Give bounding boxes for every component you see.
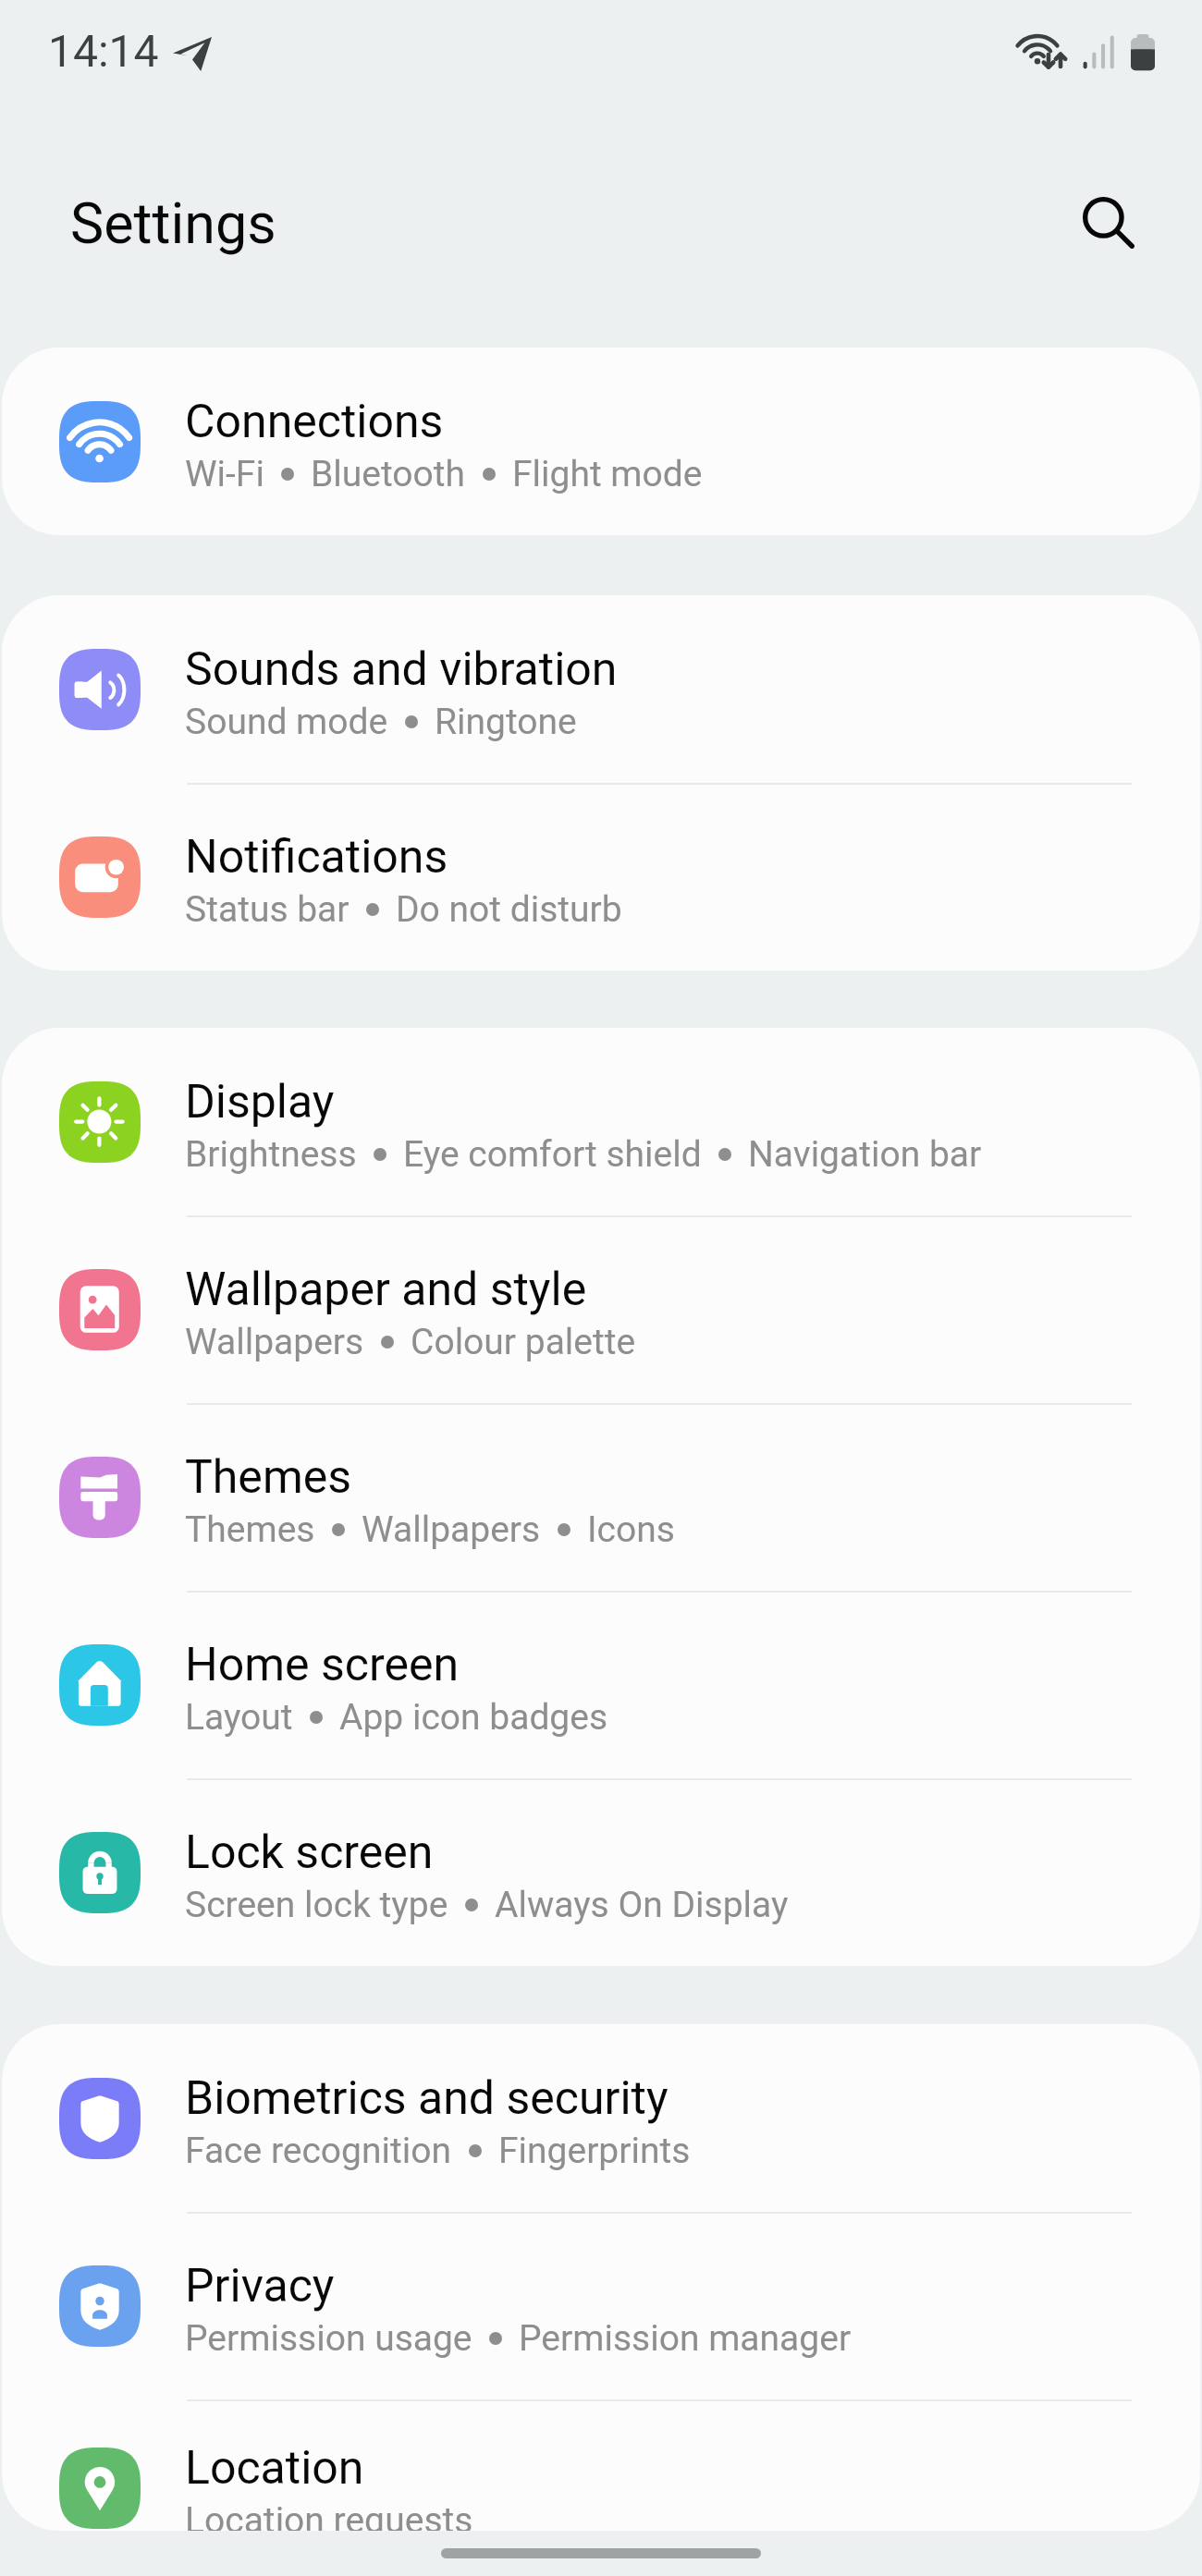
staticText: Sounds and vibration <box>185 642 618 697</box>
button[interactable]: Connections <box>2 348 1200 535</box>
staticText: Colour palette <box>411 1321 636 1363</box>
staticText: Themes <box>185 1508 315 1551</box>
button[interactable]: Lock screen <box>2 1778 1200 1966</box>
staticText: Do not disturb <box>396 888 622 931</box>
staticText: 14:14 <box>48 25 159 77</box>
staticText: Flight mode <box>512 453 703 495</box>
staticText: Themes <box>185 1450 352 1505</box>
button[interactable]: Location <box>2 2399 1200 2576</box>
staticText: Wi-Fi <box>185 453 264 495</box>
staticText: Brightness <box>185 1133 357 1176</box>
staticText: Screen lock type <box>185 1884 448 1926</box>
staticText: Settings <box>70 190 276 256</box>
button[interactable]: Wallpaper and style <box>2 1215 1200 1403</box>
staticText: Home screen <box>185 1638 460 1692</box>
button[interactable]: Biometrics and security <box>2 2024 1200 2212</box>
staticText: Privacy <box>185 2259 335 2314</box>
button[interactable]: Notifications <box>2 783 1200 971</box>
staticText: Wallpapers <box>185 1321 364 1363</box>
staticText: Navigation bar <box>748 1133 982 1176</box>
staticText: Fingerprints <box>498 2130 691 2172</box>
staticText: Ringtone <box>435 701 577 743</box>
staticText: Sound mode <box>185 701 388 743</box>
staticText: Display <box>185 1075 335 1129</box>
button[interactable]: Search <box>1065 177 1158 270</box>
staticText: Always On Display <box>495 1884 789 1926</box>
staticText: Layout <box>185 1696 293 1739</box>
staticText: Wallpaper and style <box>185 1263 587 1317</box>
staticText: Location <box>185 2441 364 2496</box>
staticText: Lock screen <box>185 1825 434 1880</box>
staticText: Connections <box>185 395 444 449</box>
button[interactable]: Display <box>2 1028 1200 1215</box>
button[interactable]: Privacy <box>2 2212 1200 2399</box>
staticText: App icon badges <box>339 1696 608 1739</box>
button[interactable]: Themes <box>2 1403 1200 1591</box>
button[interactable]: Sounds and vibration <box>2 595 1200 783</box>
staticText: Icons <box>587 1508 675 1551</box>
staticText: Face recognition <box>185 2130 452 2172</box>
staticText: Biometrics and security <box>185 2071 668 2126</box>
staticText: Status bar <box>185 888 350 931</box>
staticText: Permission manager <box>519 2317 852 2360</box>
staticText: Location requests <box>185 2499 473 2542</box>
staticText: Bluetooth <box>311 453 466 495</box>
staticText: Permission usage <box>185 2317 472 2360</box>
staticText: Notifications <box>185 830 448 885</box>
button[interactable]: Home screen <box>2 1591 1200 1778</box>
staticText: Eye comfort shield <box>403 1133 702 1176</box>
staticText: Wallpapers <box>362 1508 541 1551</box>
